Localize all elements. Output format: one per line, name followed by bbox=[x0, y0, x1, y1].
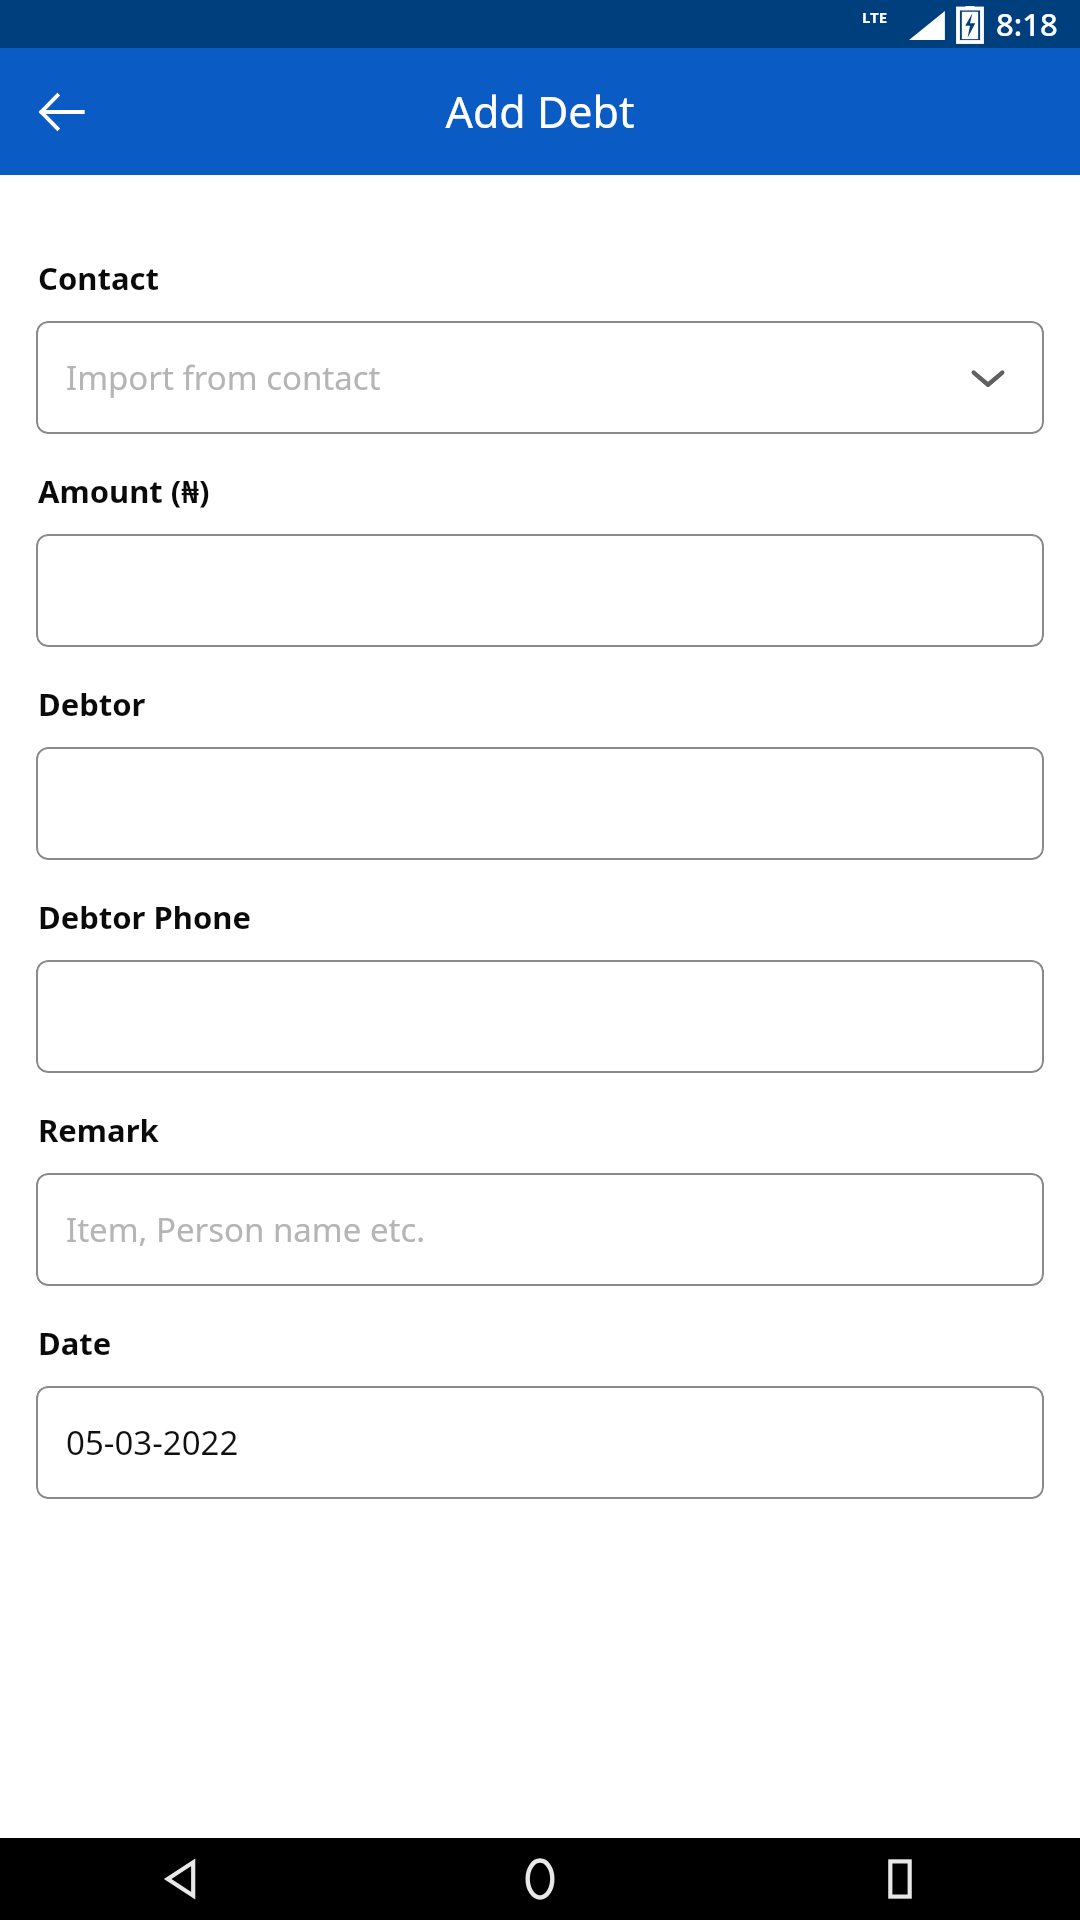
staticText: Debtor Phone bbox=[38, 896, 251, 938]
staticText: Import from contact bbox=[66, 355, 966, 400]
button[interactable]: Recent apps bbox=[720, 1838, 1080, 1920]
staticText: Debtor bbox=[38, 683, 146, 725]
button[interactable] bbox=[36, 747, 1044, 860]
staticText: Item, Person name etc. bbox=[66, 1207, 426, 1252]
button[interactable]: Home bbox=[360, 1838, 720, 1920]
button[interactable]: Import from contact bbox=[36, 321, 1044, 434]
button[interactable]: Item, Person name etc. bbox=[36, 1173, 1044, 1286]
staticText: LTE bbox=[862, 7, 888, 27]
button[interactable] bbox=[36, 534, 1044, 647]
button[interactable]: Back bbox=[26, 76, 98, 148]
staticText: Date bbox=[38, 1322, 112, 1364]
button[interactable]: 05-03-2022 bbox=[36, 1386, 1044, 1499]
staticText: Remark bbox=[38, 1109, 159, 1151]
staticText: Contact bbox=[38, 257, 159, 299]
staticText: Amount (₦) bbox=[38, 470, 210, 512]
staticText: 8:18 bbox=[996, 3, 1058, 45]
staticText: 05-03-2022 bbox=[66, 1420, 239, 1465]
button[interactable] bbox=[36, 960, 1044, 1073]
staticText: Add Debt bbox=[445, 82, 635, 141]
other: Open contact picker bbox=[966, 356, 1010, 400]
button[interactable]: Back bbox=[0, 1838, 360, 1920]
